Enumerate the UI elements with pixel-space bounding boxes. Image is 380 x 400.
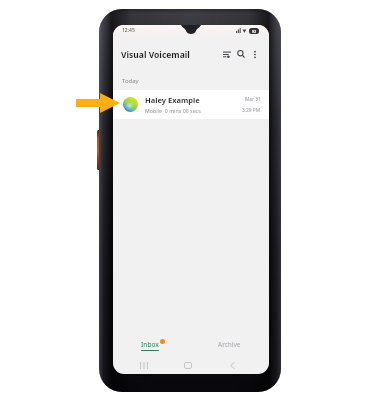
button[interactable]: Search: [234, 47, 248, 61]
button[interactable]: More options: [249, 48, 261, 60]
button[interactable]: Back: [222, 356, 242, 374]
button[interactable]: Archive: [209, 335, 249, 355]
button[interactable]: Home: [178, 356, 198, 374]
staticText: Today: [122, 77, 139, 85]
staticText: 12:45: [122, 27, 135, 34]
staticText: Archive: [218, 340, 241, 349]
staticText: Mar 31: [245, 96, 261, 103]
button[interactable]: Haley Example: [113, 90, 269, 119]
staticText: Haley Example: [145, 95, 200, 105]
button[interactable]: Sort: [220, 47, 234, 61]
staticText: 92: [252, 29, 257, 34]
staticText: 3:29 PM: [242, 107, 261, 114]
staticText: Inbox: [141, 340, 159, 349]
staticText: Visual Voicemail: [121, 49, 190, 61]
button[interactable]: Inbox: [129, 335, 171, 355]
staticText: Mobile 0 mins 06 secs: [145, 107, 201, 114]
button[interactable]: Recent apps: [134, 356, 154, 374]
